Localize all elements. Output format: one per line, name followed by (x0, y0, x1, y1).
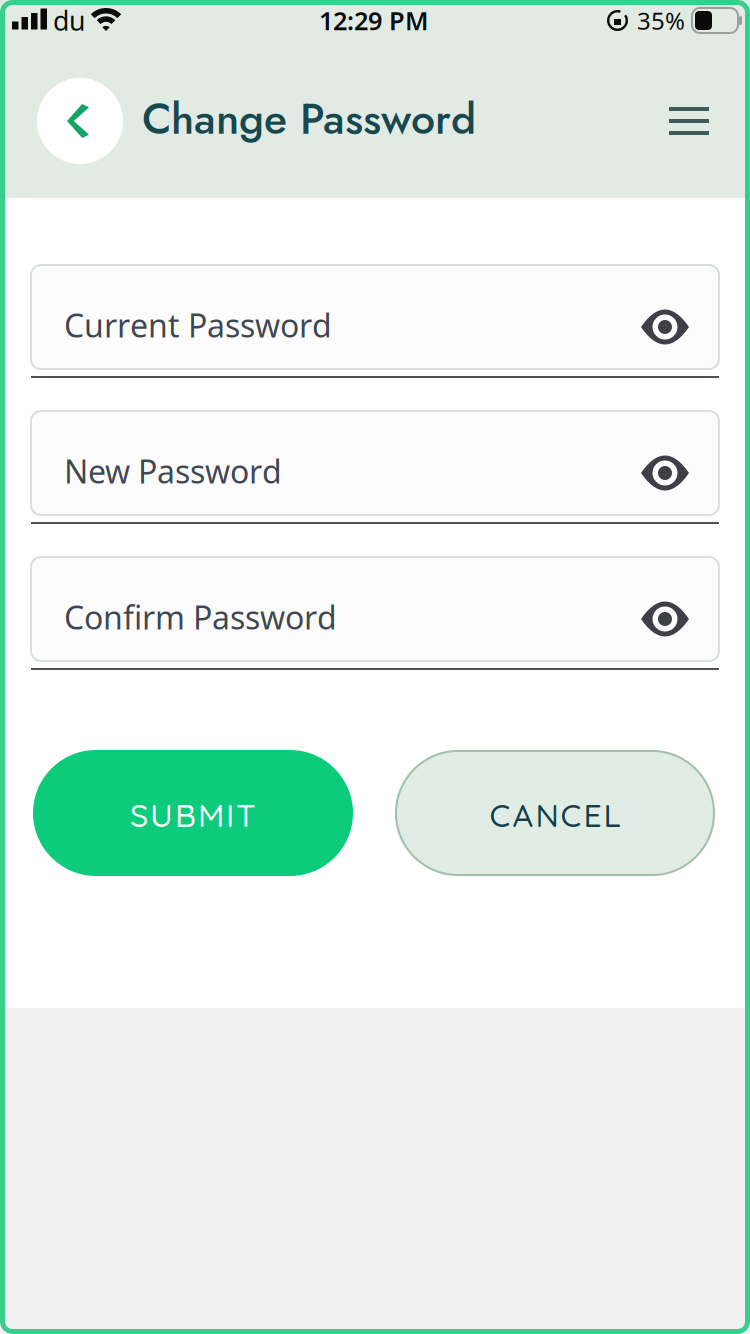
button[interactable]: Menu (669, 107, 709, 135)
staticText: CANCEL (489, 795, 620, 835)
button[interactable]: Show password (641, 455, 689, 490)
staticText: du (53, 3, 85, 38)
staticText: Confirm Password (64, 596, 337, 638)
staticText: Current Password (64, 304, 332, 346)
staticText: 35% (637, 5, 685, 36)
button[interactable]: SUBMIT (33, 750, 353, 876)
button[interactable]: Back (37, 78, 123, 164)
staticText: SUBMIT (130, 795, 256, 835)
button[interactable]: Show password (641, 309, 689, 344)
staticText: 12:29 PM (319, 4, 429, 37)
staticText: New Password (64, 450, 282, 492)
button[interactable]: CANCEL (395, 750, 715, 876)
staticText: Change Password (142, 88, 476, 150)
button[interactable]: Show password (641, 601, 689, 636)
